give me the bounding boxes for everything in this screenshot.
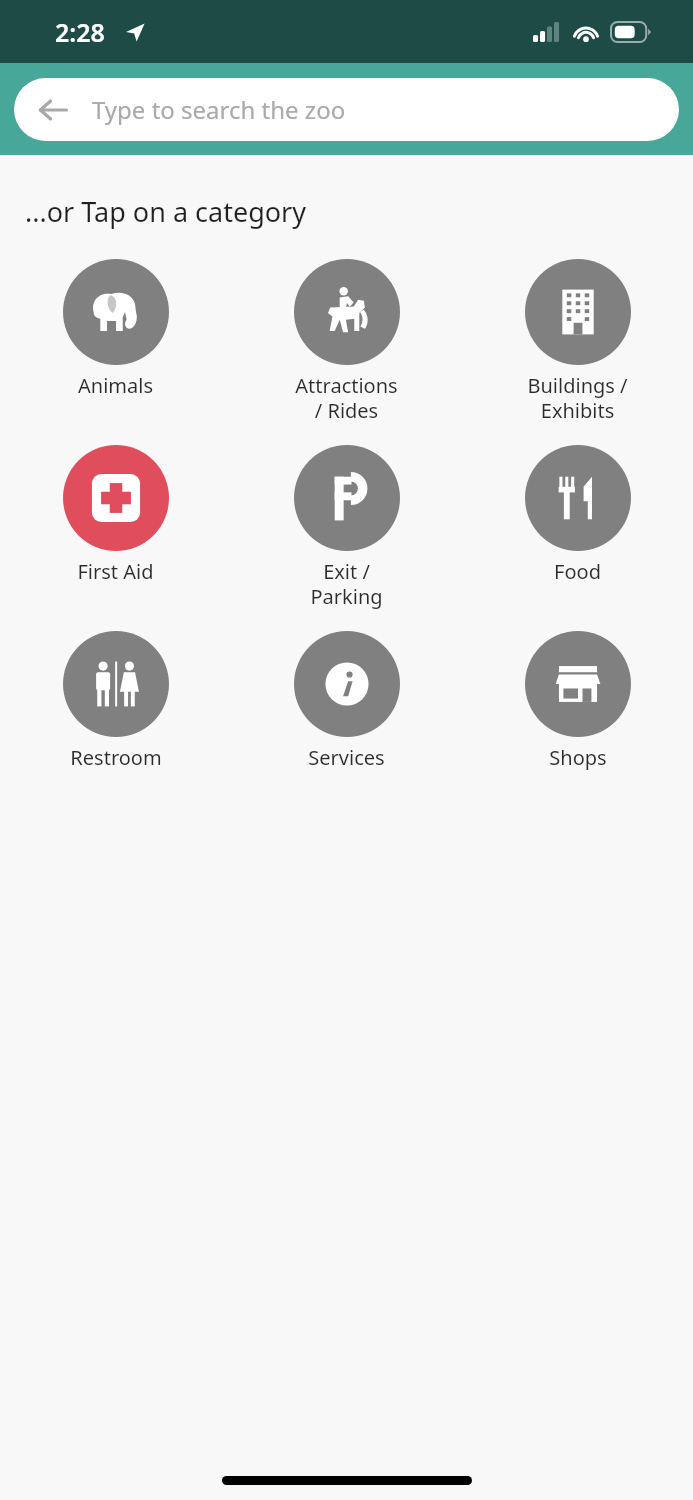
staticText: Buildings / Exhibits xyxy=(527,372,628,424)
staticText: ...or Tap on a category xyxy=(25,193,306,230)
button[interactable]: First Aid xyxy=(0,445,231,585)
button[interactable]: Back xyxy=(36,93,70,127)
button[interactable]: Buildings / Exhibits xyxy=(462,259,693,424)
staticText: Type to search the zoo xyxy=(92,93,346,126)
button[interactable]: Restroom xyxy=(0,631,231,771)
staticText: Shops xyxy=(549,744,607,771)
staticText: Restroom xyxy=(70,744,162,771)
staticText: Services xyxy=(308,744,385,771)
staticText: Animals xyxy=(78,372,153,399)
button[interactable]: Animals xyxy=(0,259,231,399)
button[interactable]: Shops xyxy=(462,631,693,771)
staticText: Exit / Parking xyxy=(310,558,383,610)
button[interactable]: Exit / Parking xyxy=(231,445,462,610)
button[interactable]: Back xyxy=(14,78,679,141)
button[interactable]: Services xyxy=(231,631,462,771)
staticText: 2:28 xyxy=(55,15,105,49)
staticText: Attractions / Rides xyxy=(295,372,398,424)
button[interactable]: Attractions / Rides xyxy=(231,259,462,424)
staticText: First Aid xyxy=(77,558,154,585)
button[interactable]: Food xyxy=(462,445,693,585)
staticText: Food xyxy=(554,558,601,585)
